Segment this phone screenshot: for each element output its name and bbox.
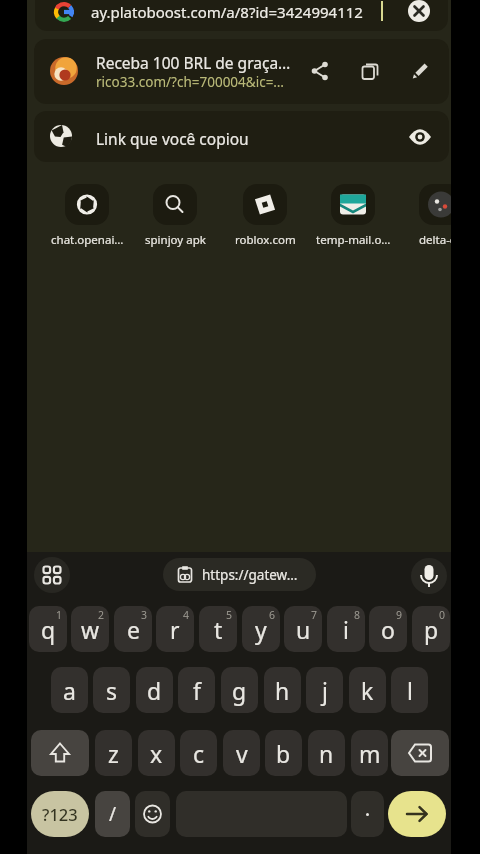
staticText: Receba 100 BRL de graça… — [96, 52, 291, 73]
button[interactable] — [411, 558, 447, 594]
button[interactable] — [419, 184, 451, 225]
button[interactable]: p — [412, 606, 450, 652]
staticText: c — [193, 738, 205, 769]
button[interactable]: v — [223, 730, 260, 776]
staticText: k — [361, 675, 374, 706]
button[interactable]: r — [156, 606, 194, 652]
button[interactable]: i — [327, 606, 365, 652]
staticText: / — [109, 801, 117, 827]
staticText: g — [232, 675, 247, 706]
button[interactable] — [135, 791, 170, 837]
button[interactable]: https://gatew… — [163, 558, 316, 591]
button[interactable]: a — [51, 667, 88, 713]
button[interactable]: Link que você copiou — [34, 111, 449, 162]
staticText: v — [236, 738, 248, 769]
staticText: n — [319, 738, 334, 769]
button[interactable]: ay.platoboost.com/a/8?id=3424994112 — [35, 0, 448, 31]
button[interactable]: b — [265, 730, 302, 776]
staticText: 9 — [396, 608, 403, 622]
staticText: ay.platoboost.com/a/8?id=3424994112 — [91, 2, 363, 22]
button[interactable]: ?123 — [31, 791, 89, 837]
staticText: 7 — [311, 608, 318, 622]
button[interactable]: u — [284, 606, 322, 652]
button[interactable]: q — [29, 606, 67, 652]
button[interactable] — [331, 184, 375, 225]
staticText: j — [322, 675, 328, 706]
staticText: u — [296, 614, 311, 645]
staticText: 2 — [98, 608, 105, 622]
button[interactable]: c — [180, 730, 217, 776]
button[interactable]: n — [308, 730, 345, 776]
button[interactable] — [31, 730, 89, 776]
staticText: y — [255, 614, 267, 645]
staticText: rico33.com/?ch=700004&ic=… — [96, 73, 285, 91]
button[interactable]: z — [95, 730, 132, 776]
staticText: 3 — [141, 608, 148, 622]
button[interactable] — [153, 184, 197, 225]
staticText: 6 — [269, 608, 276, 622]
staticText: Link que você copiou — [96, 128, 249, 149]
button[interactable] — [243, 184, 287, 225]
staticText: w — [81, 614, 100, 645]
button[interactable] — [408, 0, 430, 22]
staticText: o — [381, 614, 395, 645]
button[interactable] — [310, 61, 330, 81]
staticText: 5 — [226, 608, 233, 622]
button[interactable] — [360, 61, 380, 81]
button[interactable]: o — [369, 606, 407, 652]
staticText: 0 — [439, 608, 446, 622]
staticText: r — [170, 614, 180, 645]
staticText: z — [108, 738, 119, 769]
button[interactable] — [65, 184, 109, 225]
staticText: 4 — [183, 608, 190, 622]
button[interactable]: s — [93, 667, 130, 713]
staticText: 8 — [354, 608, 361, 622]
staticText: s — [106, 675, 118, 706]
staticText: q — [41, 614, 56, 645]
staticText: m — [359, 738, 381, 769]
button[interactable]: t — [199, 606, 237, 652]
button[interactable] — [351, 791, 384, 837]
button[interactable]: j — [306, 667, 343, 713]
button[interactable]: w — [71, 606, 109, 652]
button[interactable] — [408, 125, 432, 149]
staticText: ?123 — [42, 803, 78, 825]
button[interactable]: f — [178, 667, 215, 713]
button[interactable]: d — [136, 667, 173, 713]
button[interactable]: x — [138, 730, 175, 776]
staticText: delta-ex — [419, 232, 451, 248]
staticText: a — [63, 675, 76, 706]
staticText: spinjoy apk — [145, 232, 206, 248]
button[interactable]: h — [264, 667, 301, 713]
button[interactable]: Receba 100 BRL de graça… — [34, 39, 449, 104]
staticText: p — [424, 614, 439, 645]
button[interactable]: e — [114, 606, 152, 652]
staticText: h — [275, 675, 290, 706]
staticText: chat.openai… — [51, 232, 124, 248]
staticText: e — [127, 614, 140, 645]
button[interactable] — [388, 791, 446, 837]
button[interactable]: y — [242, 606, 280, 652]
staticText: https://gatew… — [202, 566, 298, 584]
staticText: i — [343, 614, 349, 645]
button[interactable]: g — [221, 667, 258, 713]
staticText: l — [407, 675, 413, 706]
button[interactable] — [34, 557, 70, 593]
button[interactable]: l — [391, 667, 428, 713]
button[interactable]: k — [349, 667, 386, 713]
button[interactable] — [410, 61, 430, 81]
button[interactable] — [391, 730, 449, 776]
staticText: d — [147, 675, 162, 706]
staticText: temp-mail.o… — [316, 232, 391, 248]
staticText: b — [276, 738, 291, 769]
staticText: t — [214, 614, 223, 645]
staticText: x — [150, 738, 163, 769]
button[interactable]: m — [351, 730, 388, 776]
staticText: f — [193, 675, 201, 706]
button[interactable]: / — [95, 791, 130, 837]
staticText: roblox.com — [235, 232, 296, 248]
staticText: 1 — [56, 608, 63, 622]
